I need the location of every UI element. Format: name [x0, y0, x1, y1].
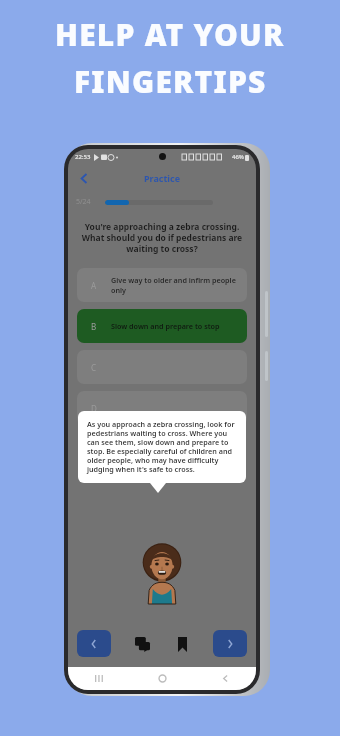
staticText: Give way to older and infirm people only: [111, 275, 247, 295]
button[interactable]: B: [77, 309, 247, 343]
staticText: HELP AT YOUR: [55, 14, 285, 55]
staticText: Slow down and prepare to stop: [111, 321, 220, 331]
button[interactable]: Bookmark: [169, 631, 195, 657]
button[interactable]: Next: [213, 630, 247, 657]
staticText: 22:53: [75, 153, 91, 161]
button[interactable]: Back: [221, 674, 230, 683]
button[interactable]: Recents: [94, 674, 103, 683]
button[interactable]: D: [77, 391, 247, 425]
staticText: C: [91, 362, 97, 373]
staticText: 46%: [232, 153, 244, 161]
staticText: FINGERTIPS: [74, 61, 267, 102]
button[interactable]: A: [77, 268, 247, 302]
button[interactable]: Previous: [77, 630, 111, 657]
staticText: You're approaching a zebra crossing. Wha…: [76, 221, 248, 254]
button[interactable]: Comments: [129, 631, 155, 657]
staticText: As you approach a zebra crossing, look f…: [87, 419, 237, 475]
button[interactable]: Home: [158, 674, 167, 683]
staticText: D: [91, 403, 97, 414]
staticText: 5/24: [76, 197, 91, 207]
staticText: A: [91, 280, 97, 291]
staticText: B: [91, 321, 97, 332]
button[interactable]: Back: [74, 168, 94, 188]
staticText: Practice: [144, 172, 181, 184]
